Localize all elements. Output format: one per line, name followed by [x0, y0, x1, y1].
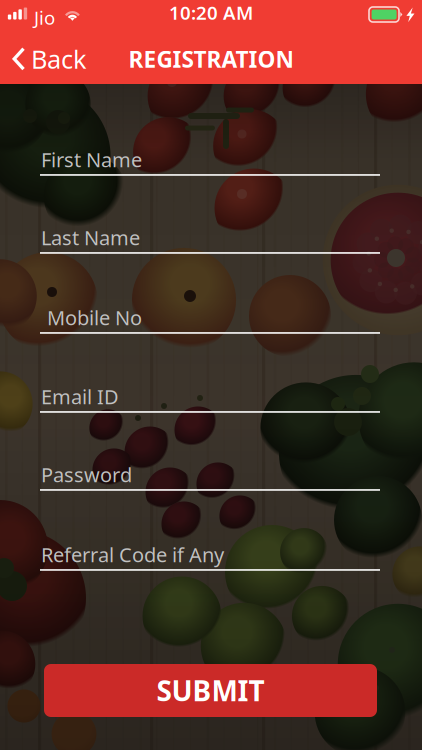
staticText: SUBMIT — [156, 672, 264, 709]
button[interactable]: Password — [40, 461, 380, 493]
staticText: First Name — [41, 146, 142, 173]
staticText: Mobile No — [47, 304, 142, 331]
button[interactable]: SUBMIT — [44, 664, 377, 717]
button[interactable]: Back — [12, 38, 112, 80]
staticText: REGISTRATION — [128, 44, 293, 74]
button[interactable]: Referral Code if Any — [40, 541, 380, 573]
button[interactable]: Last Name — [40, 224, 380, 256]
staticText: Last Name — [41, 224, 140, 251]
staticText: Referral Code if Any — [41, 541, 224, 568]
staticText: Jio — [34, 5, 55, 30]
button[interactable]: Mobile No — [40, 304, 380, 336]
button[interactable]: First Name — [40, 146, 380, 178]
staticText: Back — [31, 42, 87, 76]
staticText: 10:20 AM — [169, 0, 253, 25]
staticText: Password — [41, 461, 132, 488]
button[interactable]: Email ID — [40, 383, 380, 415]
staticText: Email ID — [41, 383, 119, 410]
